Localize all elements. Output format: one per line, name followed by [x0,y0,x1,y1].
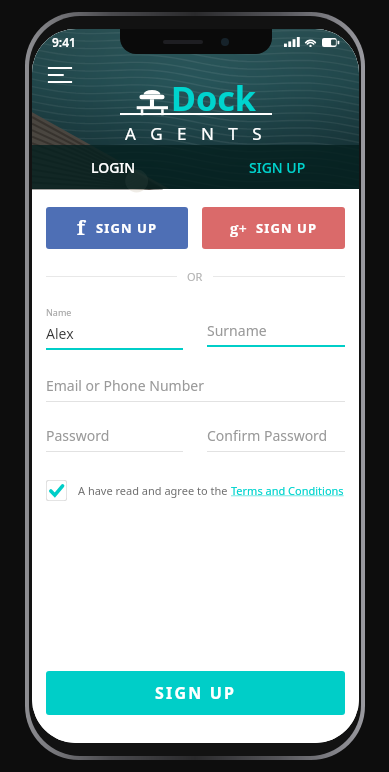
button[interactable]: Open menu [40,55,80,95]
staticText: Confirm Password [207,426,328,445]
button[interactable]: LOGIN [32,145,195,189]
staticText: SIGN UP [256,219,318,237]
button[interactable]: SIGN UP [195,145,359,189]
button[interactable]: Name [46,306,183,350]
staticText: Name [46,306,72,318]
staticText: f [77,215,85,241]
staticText: SIGN UP [155,682,237,704]
staticText: A have read and agree to the [78,483,231,498]
staticText: g+ [230,218,247,238]
staticText: A G E N T S [125,122,267,145]
staticText: Surname [207,321,267,340]
button[interactable]: Terms and Conditions [231,483,344,498]
staticText: Alex [46,324,74,343]
staticText: SIGN UP [96,219,158,237]
button[interactable]: Surname [207,306,345,347]
staticText: Dock [171,75,256,121]
button[interactable]: Password [46,426,183,452]
button[interactable]: g+ [202,207,345,249]
staticText: Password [46,426,110,445]
button[interactable]: Confirm Password [207,426,345,452]
button[interactable]: Agree to terms checkbox [46,480,67,501]
button[interactable]: Email or Phone Number [46,376,345,402]
staticText: Email or Phone Number [46,376,204,395]
button[interactable]: SIGN UP [46,671,345,715]
button[interactable]: f [46,207,188,249]
staticText: 9:41 [52,34,76,50]
staticText: SIGN UP [249,158,306,177]
staticText: LOGIN [91,158,136,177]
staticText: OR [187,269,203,284]
